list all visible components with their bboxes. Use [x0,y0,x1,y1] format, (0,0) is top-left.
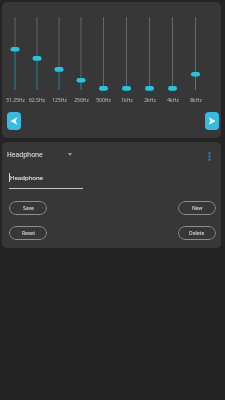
staticText: Headphone [10,174,44,182]
staticText: 8kHz [190,97,202,103]
button[interactable]: Band level [92,2,115,97]
button[interactable]: New [178,201,216,215]
button[interactable]: More options [202,147,217,166]
staticText: 31.25Hz [6,97,25,103]
button[interactable]: Band level [4,2,26,97]
staticText: Delete [189,230,205,237]
staticText: 4kHz [167,97,179,103]
staticText: Reset [22,230,35,237]
staticText: 2kHz [144,97,156,103]
staticText: 1kHz [121,97,133,103]
button[interactable]: Band level [161,2,184,97]
button[interactable]: Previous preset [7,112,21,130]
staticText: Save [23,205,34,212]
button[interactable]: Reset [9,226,47,240]
staticText: 62.5Hz [29,97,45,103]
button[interactable]: Band level [70,2,92,97]
staticText: New [192,205,203,212]
button[interactable]: Band level [26,2,48,97]
button[interactable]: Save [9,201,47,215]
staticText: 125Hz [52,97,67,103]
button[interactable]: Band level [115,2,138,97]
button[interactable]: Delete [178,226,216,240]
button[interactable]: Band level [48,2,70,97]
button[interactable]: Band level [184,2,207,97]
button[interactable]: Next preset [205,112,219,130]
staticText: 250Hz [74,97,89,103]
staticText: Headphone [7,150,43,159]
button[interactable]: Band level [138,2,161,97]
button[interactable]: Headphone [7,145,72,163]
staticText: 500Hz [96,97,111,103]
